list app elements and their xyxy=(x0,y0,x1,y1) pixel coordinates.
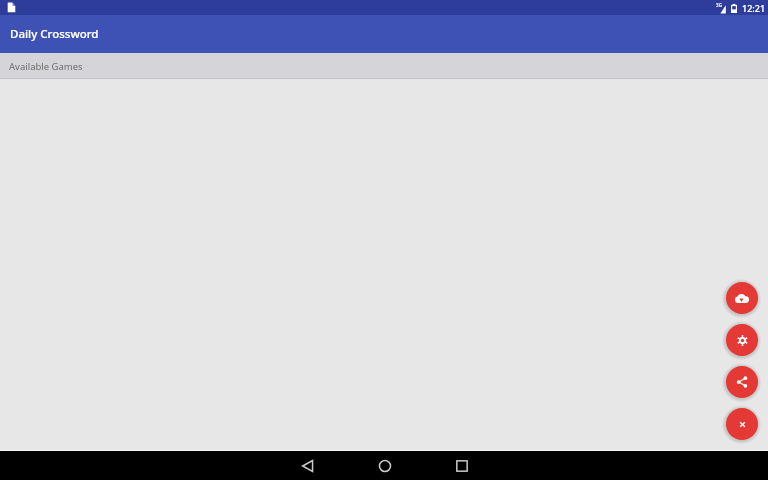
button[interactable]: Settings xyxy=(726,324,758,356)
button[interactable]: Upload to cloud xyxy=(726,282,758,314)
button[interactable]: Recents xyxy=(423,451,500,480)
staticText: 12:21 xyxy=(742,2,766,14)
staticText: Available Games xyxy=(9,60,83,73)
staticText: 3G xyxy=(716,2,722,8)
staticText: Daily Crossword xyxy=(10,26,99,42)
button[interactable]: Share xyxy=(726,366,758,398)
button[interactable]: Back xyxy=(269,451,346,480)
button[interactable]: Home xyxy=(346,451,423,480)
button[interactable]: Close xyxy=(726,408,758,440)
